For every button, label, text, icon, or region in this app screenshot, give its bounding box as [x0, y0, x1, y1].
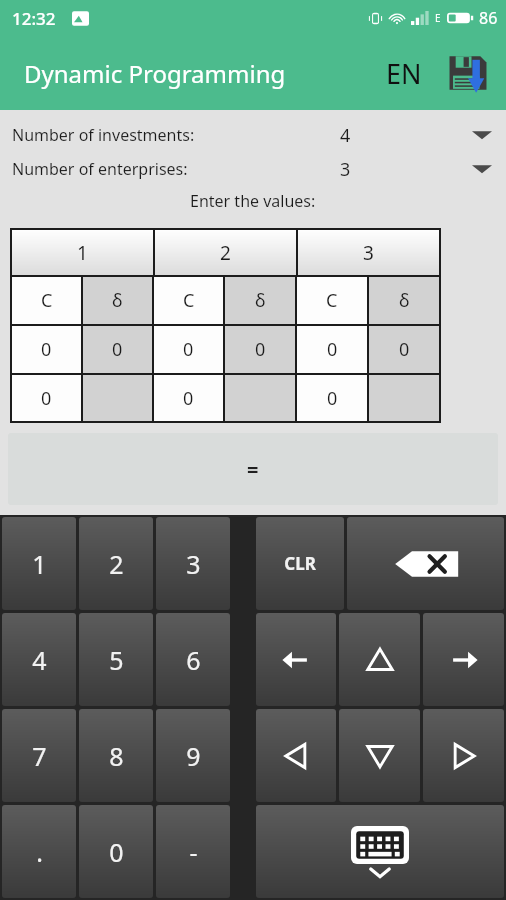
- button[interactable]: 2: [155, 230, 296, 275]
- staticText: CLR: [284, 552, 316, 575]
- staticText: -: [189, 835, 198, 869]
- staticText: E: [435, 11, 441, 25]
- staticText: 0: [255, 337, 266, 362]
- button[interactable]: 0: [12, 326, 81, 373]
- button[interactable]: 0: [225, 326, 295, 373]
- staticText: C: [41, 288, 53, 313]
- button[interactable]: 7: [2, 709, 76, 802]
- staticText: Number of enterprises:: [12, 158, 188, 180]
- button[interactable]: 9: [156, 709, 230, 802]
- button[interactable]: 4: [2, 613, 76, 706]
- button[interactable]: C: [154, 277, 223, 324]
- button[interactable]: Number of enterprises:: [0, 152, 506, 186]
- button[interactable]: =: [8, 433, 498, 505]
- staticText: 3: [186, 547, 201, 581]
- staticText: 0: [399, 337, 410, 362]
- button[interactable]: 0: [79, 805, 153, 898]
- button[interactable]: 5: [79, 613, 153, 706]
- staticText: C: [183, 288, 195, 313]
- button[interactable]: 3: [156, 517, 230, 610]
- button[interactable]: 0: [154, 326, 223, 373]
- button[interactable]: C: [12, 277, 81, 324]
- staticText: δ: [112, 288, 123, 313]
- button[interactable]: C: [297, 277, 367, 324]
- staticText: 86: [479, 7, 498, 29]
- staticText: 0: [183, 386, 194, 411]
- staticText: 3: [363, 240, 374, 266]
- staticText: 5: [109, 643, 124, 677]
- button[interactable]: Previous: [256, 709, 336, 802]
- staticText: =: [247, 456, 259, 483]
- staticText: 7: [32, 739, 47, 773]
- button[interactable]: 8: [79, 709, 153, 802]
- button[interactable]: Hide keyboard: [256, 805, 504, 898]
- staticText: Dynamic Programming: [24, 57, 286, 90]
- button[interactable]: Next: [423, 709, 504, 802]
- staticText: 8: [109, 739, 124, 773]
- staticText: δ: [255, 288, 266, 313]
- button[interactable]: δ: [225, 277, 295, 324]
- staticText: 12:32: [12, 7, 56, 30]
- staticText: 6: [186, 643, 201, 677]
- button[interactable]: 1: [2, 517, 76, 610]
- button[interactable]: CLR: [256, 517, 344, 610]
- staticText: .: [36, 835, 43, 869]
- button[interactable]: Move up: [339, 613, 420, 706]
- staticText: 0: [41, 386, 52, 411]
- staticText: 3: [340, 157, 351, 182]
- button[interactable]: 0: [297, 326, 367, 373]
- staticText: 4: [32, 643, 47, 677]
- button[interactable]: 0: [12, 375, 81, 421]
- staticText: 1: [77, 240, 88, 266]
- button[interactable]: Save: [440, 45, 496, 101]
- staticText: 0: [112, 337, 123, 362]
- staticText: 4: [340, 123, 351, 148]
- staticText: 0: [327, 386, 338, 411]
- staticText: 2: [109, 547, 124, 581]
- staticText: 2: [220, 240, 231, 266]
- button[interactable]: 0: [297, 375, 367, 421]
- button[interactable]: δ: [83, 277, 152, 324]
- button[interactable]: Move down: [339, 709, 420, 802]
- button[interactable]: 2: [79, 517, 153, 610]
- staticText: 0: [41, 337, 52, 362]
- button[interactable]: 0: [369, 326, 439, 373]
- staticText: Number of investments:: [12, 124, 195, 146]
- staticText: 9: [186, 739, 201, 773]
- staticText: 0: [327, 337, 338, 362]
- staticText: δ: [399, 288, 410, 313]
- button[interactable]: 1: [12, 230, 153, 275]
- staticText: 0: [183, 337, 194, 362]
- button[interactable]: EN: [380, 51, 428, 96]
- button[interactable]: Move right: [423, 613, 504, 706]
- button[interactable]: Move left: [256, 613, 336, 706]
- button[interactable]: 0: [83, 326, 152, 373]
- button[interactable]: -: [156, 805, 230, 898]
- button[interactable]: 3: [298, 230, 439, 275]
- staticText: 0: [109, 835, 124, 869]
- button[interactable]: 6: [156, 613, 230, 706]
- staticText: C: [326, 288, 338, 313]
- button[interactable]: Number of investments:: [0, 118, 506, 152]
- button[interactable]: Backspace: [347, 517, 504, 610]
- staticText: EN: [386, 55, 422, 92]
- button[interactable]: .: [2, 805, 76, 898]
- staticText: Enter the values:: [190, 190, 316, 212]
- button[interactable]: 0: [154, 375, 223, 421]
- staticText: 1: [32, 547, 47, 581]
- button[interactable]: δ: [369, 277, 439, 324]
